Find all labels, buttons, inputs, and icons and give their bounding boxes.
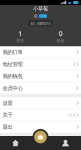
button[interactable]: 会员中心 [0,82,81,94]
button[interactable]: 0 [40,29,81,43]
staticText: 粉丝 [57,38,65,43]
button[interactable]: Camera [32,129,48,145]
staticText: 小草莓 [33,5,48,12]
staticText: 1 [18,29,22,38]
staticText: 地址管理 [2,61,22,67]
staticText: 设置 [2,100,12,106]
staticText: 3 [73,61,75,67]
staticText: 退出 [2,124,12,130]
staticText: 会员中心 [2,85,22,91]
staticText: v1.0 [68,112,75,118]
button[interactable]: 地址管理 [0,58,81,70]
button[interactable]: 设置 [0,97,81,109]
button[interactable]: 关于 [0,109,81,121]
staticText: 关于 [2,112,12,118]
staticText: 关注 [16,38,24,43]
staticText: 0 [59,29,63,38]
button[interactable]: 我的钱包 [0,70,81,82]
button[interactable]: 1 [0,29,40,43]
button[interactable]: Home [0,136,31,150]
button[interactable]: 退出 [0,121,81,133]
staticText: ID: 3480215 [30,20,50,26]
staticText: 我的钱包 [2,73,22,79]
button[interactable]: Profile [50,136,81,150]
button[interactable]: 我的订单 [0,46,81,58]
staticText: 我的订单 [2,49,22,56]
